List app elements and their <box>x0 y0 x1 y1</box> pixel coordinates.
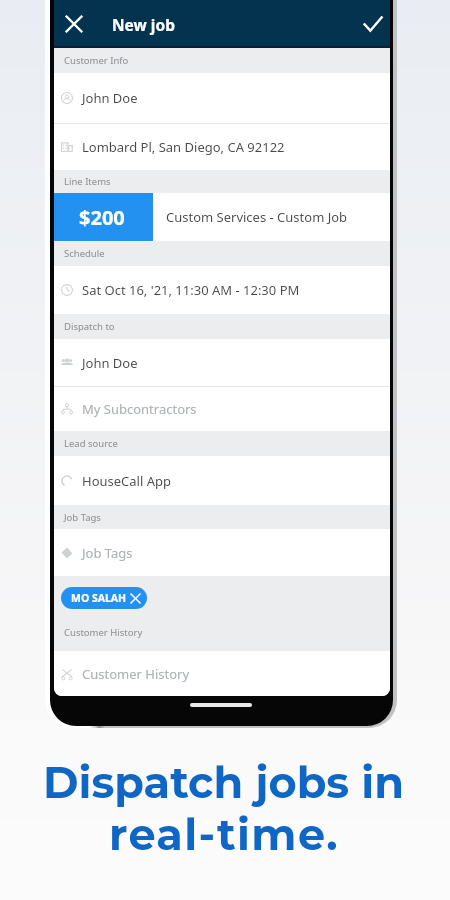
staticText: Dispatch jobs in <box>43 756 404 808</box>
staticText: Line Items <box>64 175 111 188</box>
staticText: Customer Info <box>64 54 129 67</box>
staticText: Schedule <box>64 247 105 260</box>
staticText: Customer History <box>82 665 190 683</box>
staticText: Sat Oct 16, '21, 11:30 AM - 12:30 PM <box>82 281 300 299</box>
staticText: Customer History <box>64 626 143 639</box>
staticText: HouseCall App <box>82 472 171 490</box>
button[interactable]: $200 <box>54 193 390 241</box>
staticText: New job <box>112 14 175 35</box>
staticText: real-time. <box>109 808 339 860</box>
staticText: Dispatch to <box>64 320 115 333</box>
staticText: Job Tags <box>82 544 133 562</box>
staticText: Custom Services - Custom Job <box>166 208 348 226</box>
staticText: My Subcontractors <box>82 400 197 418</box>
button[interactable]: Save <box>356 0 390 48</box>
button[interactable]: My Subcontractors <box>54 387 390 431</box>
button[interactable]: John Doe <box>54 73 390 123</box>
staticText: MO SALAH <box>71 591 127 605</box>
button[interactable]: Sat Oct 16, '21, 11:30 AM - 12:30 PM <box>54 266 390 314</box>
button[interactable]: Close <box>54 0 93 48</box>
button[interactable]: HouseCall App <box>54 456 390 505</box>
button[interactable]: MO SALAH <box>61 587 147 609</box>
button[interactable]: Customer History <box>54 651 390 696</box>
staticText: John Doe <box>82 89 138 107</box>
staticText: Lead source <box>64 437 118 450</box>
staticText: Job Tags <box>64 511 101 524</box>
button[interactable]: John Doe <box>54 339 390 386</box>
staticText: $200 <box>79 204 125 231</box>
staticText: Lombard Pl, San Diego, CA 92122 <box>82 138 285 156</box>
button[interactable]: Lombard Pl, San Diego, CA 92122 <box>54 124 390 170</box>
button[interactable]: Job Tags <box>54 529 390 576</box>
staticText: John Doe <box>82 354 138 372</box>
